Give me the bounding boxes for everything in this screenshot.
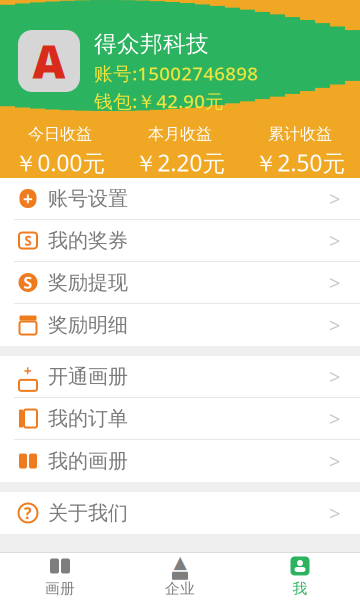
staticText: 我的订单 [48,406,128,431]
staticText: S [23,272,32,293]
staticText: 账号:15002746898 [94,61,258,86]
button[interactable]: ? [0,492,360,534]
staticText: 我的奖券 [48,228,128,253]
staticText: S [24,232,31,249]
staticText: 奖励明细 [48,313,128,337]
staticText: 企业 [165,579,195,597]
button[interactable]: + [0,356,360,398]
button[interactable]: S [0,220,360,262]
staticText: 本月收益 [148,124,212,144]
staticText: ￥0.00元 [14,148,105,178]
button[interactable]: 我的画册 [0,440,360,482]
staticText: > [329,227,340,254]
staticText: > [329,312,340,338]
staticText: 得众邦科技 [94,30,209,58]
staticText: > [329,448,340,474]
button[interactable]: + [0,178,360,220]
button[interactable]: 奖励明细 [0,304,360,346]
staticText: ▲ [173,552,186,572]
staticText: + [23,187,33,210]
button[interactable]: 我的订单 [0,398,360,440]
staticText: > [329,405,340,432]
staticText: ? [24,502,32,524]
staticText: + [24,362,32,380]
staticText: > [329,363,340,390]
staticText: 关于我们 [48,501,128,525]
staticText: 账号设置 [48,186,128,211]
staticText: 开通画册 [48,364,128,389]
staticText: > [329,500,340,526]
button[interactable]: 画册 [0,553,120,600]
staticText: 画册 [45,579,75,597]
staticText: > [329,185,340,212]
button[interactable]: ▲ [120,553,240,600]
staticText: 今日收益 [28,124,92,144]
staticText: ￥2.50元 [254,148,345,178]
button[interactable]: S [0,262,360,304]
staticText: 累计收益 [268,124,332,144]
staticText: > [329,269,340,296]
staticText: 我的画册 [48,449,128,473]
staticText: A [32,31,65,91]
staticText: 我 [292,579,307,597]
button[interactable]: 我 [240,553,360,600]
staticText: 钱包:￥42.90元 [94,89,224,113]
staticText: 奖励提现 [48,270,128,295]
staticText: ￥2.20元 [134,148,225,178]
